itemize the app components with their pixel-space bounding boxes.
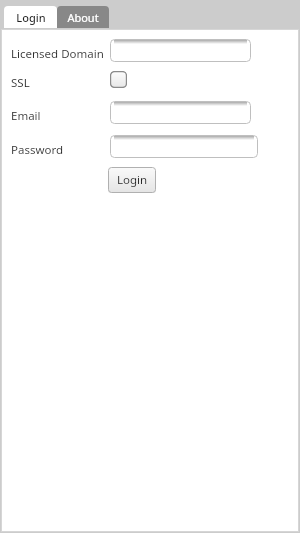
staticText: Login (117, 172, 148, 188)
button[interactable] (110, 39, 251, 62)
button[interactable]: SSL toggle (110, 71, 127, 88)
staticText: Login (16, 10, 46, 25)
button[interactable]: About (57, 6, 109, 28)
staticText: SSL (11, 75, 30, 91)
staticText: Email (11, 108, 41, 124)
staticText: Password (11, 142, 64, 158)
button[interactable]: Login (108, 167, 156, 193)
button[interactable] (110, 135, 258, 158)
button[interactable]: Login (4, 6, 57, 28)
button[interactable] (110, 101, 251, 124)
staticText: Licensed Domain (11, 46, 104, 62)
staticText: About (67, 10, 99, 25)
